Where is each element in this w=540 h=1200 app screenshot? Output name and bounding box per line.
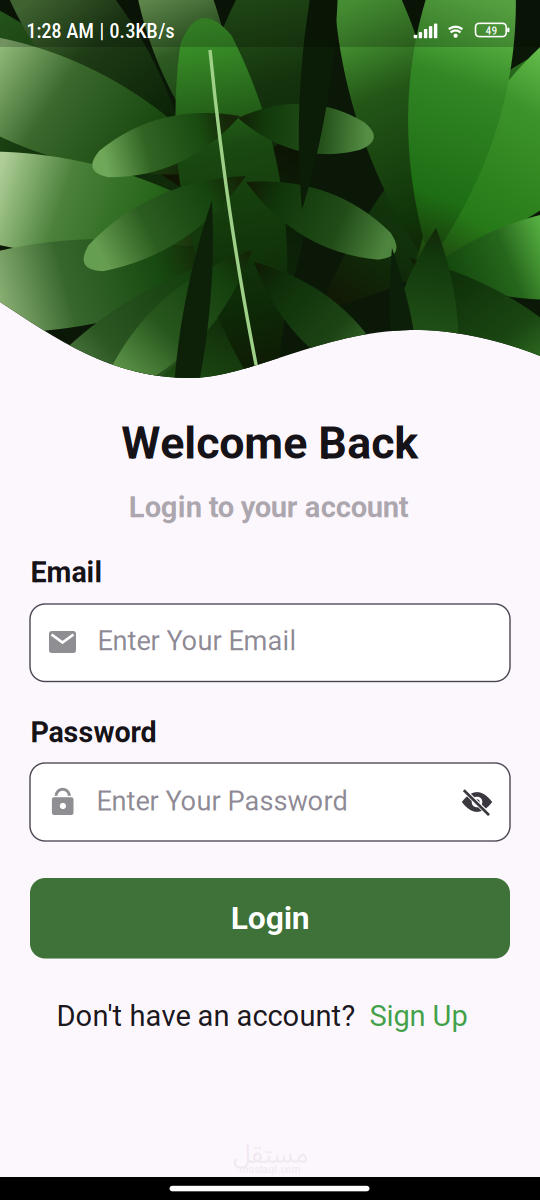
- staticText: Email: [31, 556, 103, 589]
- button[interactable]: Show password: [30, 763, 510, 841]
- staticText: Sign Up: [369, 999, 467, 1033]
- staticText: Enter Your Email: [98, 625, 297, 657]
- staticText: Enter Your Password: [97, 785, 348, 817]
- button[interactable]: Enter Your Password: [30, 763, 510, 841]
- staticText: Don't have an account?: [56, 999, 355, 1033]
- staticText: Welcome Back: [121, 417, 418, 469]
- staticText: Login to your account: [129, 490, 409, 524]
- staticText: mostaql.com: [239, 1163, 300, 1175]
- staticText: مستقل: [232, 1128, 307, 1181]
- button[interactable]: Enter Your Email: [30, 604, 510, 681]
- button[interactable]: Sign Up: [0, 0, 98, 34]
- staticText: 1:28 AM | 0.3KB/s: [26, 19, 174, 43]
- button[interactable]: Login: [30, 878, 510, 958]
- staticText: Login: [231, 899, 310, 937]
- staticText: Password: [30, 716, 156, 749]
- staticText: 49: [485, 24, 497, 37]
